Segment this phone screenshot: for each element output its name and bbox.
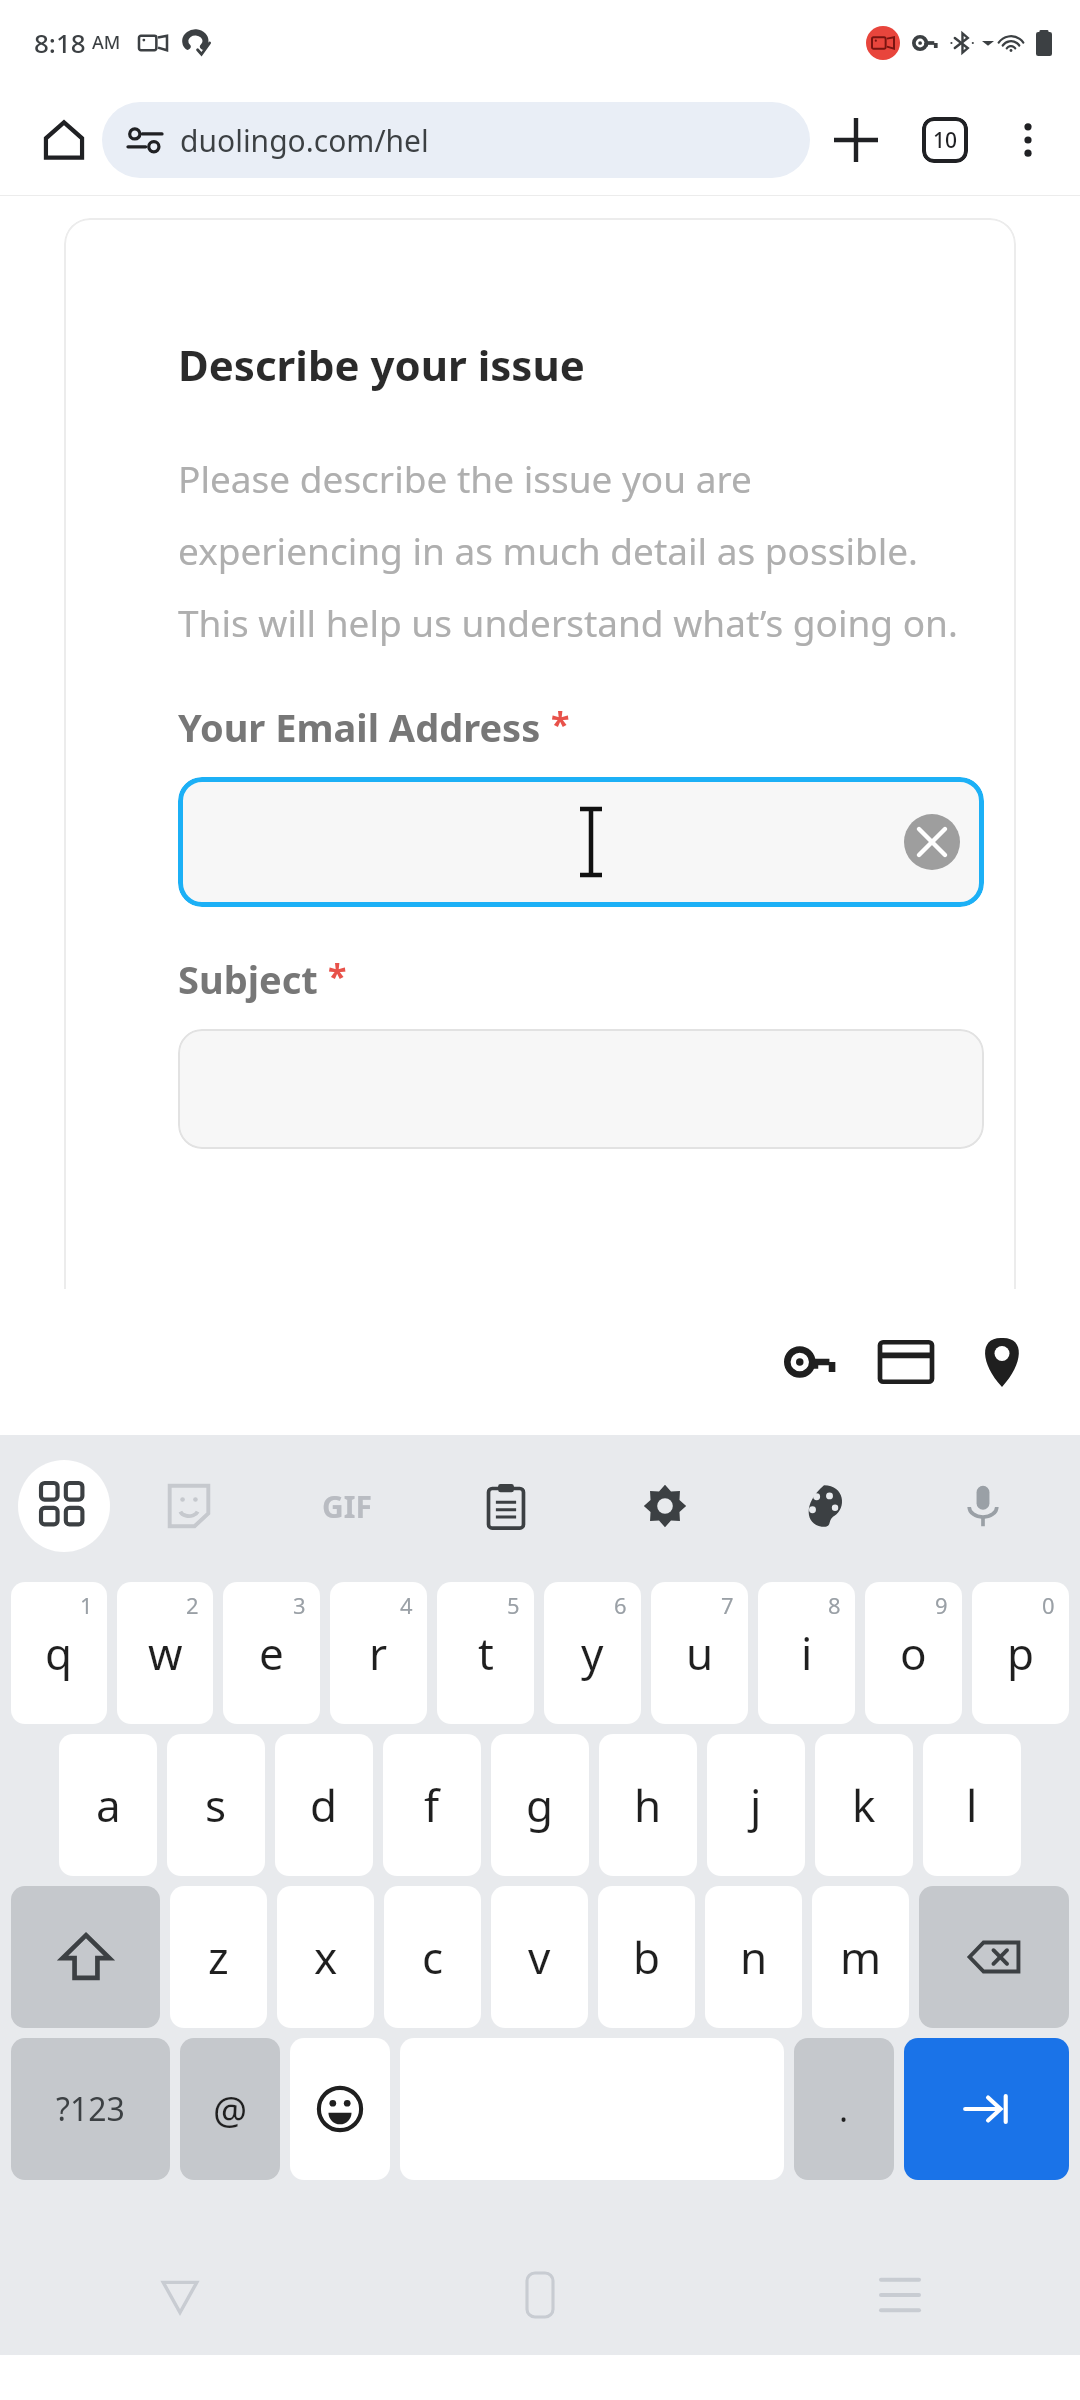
staticText: 4 — [400, 1590, 413, 1620]
staticText: GIF — [322, 1486, 372, 1527]
button[interactable]: Clear text — [904, 814, 960, 870]
button[interactable]: z — [170, 1886, 267, 2028]
staticText: a — [96, 1775, 121, 1835]
staticText: @ — [213, 2083, 248, 2135]
staticText: u — [686, 1623, 714, 1683]
staticText: b — [633, 1927, 661, 1987]
button[interactable]: Back — [135, 2250, 225, 2340]
button[interactable]: Payment methods — [858, 1314, 954, 1410]
button[interactable]: Home — [26, 102, 102, 178]
staticText: 7 — [721, 1590, 734, 1620]
button[interactable]: y — [544, 1582, 641, 1724]
staticText: m — [840, 1927, 882, 1987]
button[interactable]: x — [277, 1886, 374, 2028]
staticText: 0 — [1042, 1590, 1055, 1620]
button[interactable]: h — [599, 1734, 697, 1876]
staticText: . — [839, 2086, 849, 2132]
button[interactable]: Home — [495, 2250, 585, 2340]
button[interactable]: l — [923, 1734, 1021, 1876]
staticText: 9 — [935, 1590, 948, 1620]
staticText: 1 — [80, 1590, 93, 1620]
button[interactable]: d — [275, 1734, 373, 1876]
button[interactable]: f — [383, 1734, 481, 1876]
staticText: d — [310, 1775, 338, 1835]
staticText: * — [551, 701, 570, 747]
button[interactable]: n — [705, 1886, 802, 2028]
button[interactable]: r — [330, 1582, 427, 1724]
button[interactable]: sticker — [145, 1462, 233, 1550]
staticText: l — [966, 1775, 978, 1835]
button[interactable]: palette — [780, 1462, 868, 1550]
button[interactable]: t — [437, 1582, 534, 1724]
staticText: * — [328, 953, 347, 999]
button[interactable]: q — [11, 1582, 107, 1724]
staticText: o — [900, 1623, 927, 1683]
button[interactable]: c — [384, 1886, 481, 2028]
staticText: j — [750, 1775, 762, 1835]
button[interactable]: o — [865, 1582, 962, 1724]
button[interactable]: i — [758, 1582, 855, 1724]
staticText: y — [581, 1623, 604, 1683]
button[interactable] — [178, 1029, 984, 1149]
staticText: Your Email Address — [178, 701, 541, 753]
button[interactable]: Clear text — [178, 777, 984, 907]
staticText: f — [424, 1775, 440, 1835]
staticText: v — [528, 1927, 551, 1987]
button[interactable]: m — [812, 1886, 909, 2028]
staticText: Subject — [178, 953, 318, 1005]
staticText: k — [852, 1775, 876, 1835]
button[interactable]: . — [794, 2038, 894, 2180]
button[interactable]: a — [59, 1734, 157, 1876]
staticText: h — [634, 1775, 662, 1835]
staticText: 10 — [933, 126, 958, 155]
button[interactable]: More options — [988, 100, 1068, 180]
staticText: Describe your issue — [178, 336, 585, 393]
button[interactable]: gif — [303, 1462, 391, 1550]
button[interactable]: e — [223, 1582, 320, 1724]
button[interactable]: ?123 — [11, 2038, 170, 2180]
button[interactable]: Recent apps — [855, 2250, 945, 2340]
staticText: p — [1007, 1623, 1035, 1683]
staticText: c — [422, 1927, 444, 1987]
button[interactable]: k — [815, 1734, 913, 1876]
button[interactable]: duolingo.com/hel — [102, 102, 810, 178]
button[interactable]: @ — [180, 2038, 280, 2180]
button[interactable]: settings — [621, 1462, 709, 1550]
button[interactable]: w — [117, 1582, 213, 1724]
staticText: 2 — [186, 1590, 199, 1620]
button[interactable]: Emoji — [290, 2038, 390, 2180]
button[interactable]: j — [707, 1734, 805, 1876]
staticText: duolingo.com/hel — [180, 120, 429, 161]
staticText: t — [478, 1623, 494, 1683]
staticText: z — [208, 1927, 229, 1987]
button[interactable]: Switch tabs, 10 open — [902, 97, 988, 183]
button[interactable]: Passwords — [762, 1314, 858, 1410]
staticText: 5 — [507, 1590, 520, 1620]
button[interactable]: mic — [939, 1462, 1027, 1550]
button[interactable]: u — [651, 1582, 748, 1724]
staticText: 8 — [828, 1590, 841, 1620]
button[interactable]: v — [491, 1886, 588, 2028]
staticText: AM — [92, 30, 121, 55]
button[interactable]: Next field — [904, 2038, 1069, 2180]
button[interactable]: g — [491, 1734, 589, 1876]
button[interactable]: clipboard — [462, 1462, 550, 1550]
button[interactable]: Open features menu — [18, 1460, 110, 1552]
button[interactable]: New tab — [810, 94, 902, 186]
staticText: 6 — [614, 1590, 627, 1620]
button[interactable]: b — [598, 1886, 695, 2028]
staticText: e — [259, 1623, 284, 1683]
staticText: w — [148, 1623, 183, 1683]
staticText: n — [740, 1927, 768, 1987]
staticText: x — [314, 1927, 338, 1987]
staticText: i — [801, 1623, 813, 1683]
button[interactable]: p — [972, 1582, 1069, 1724]
button[interactable]: Addresses — [954, 1314, 1050, 1410]
button[interactable]: Backspace — [919, 1886, 1069, 2028]
staticText: 8:18 — [34, 25, 86, 60]
button[interactable]: s — [167, 1734, 265, 1876]
button[interactable]: Shift — [11, 1886, 160, 2028]
staticText: g — [526, 1775, 554, 1835]
staticText: 3 — [293, 1590, 306, 1620]
